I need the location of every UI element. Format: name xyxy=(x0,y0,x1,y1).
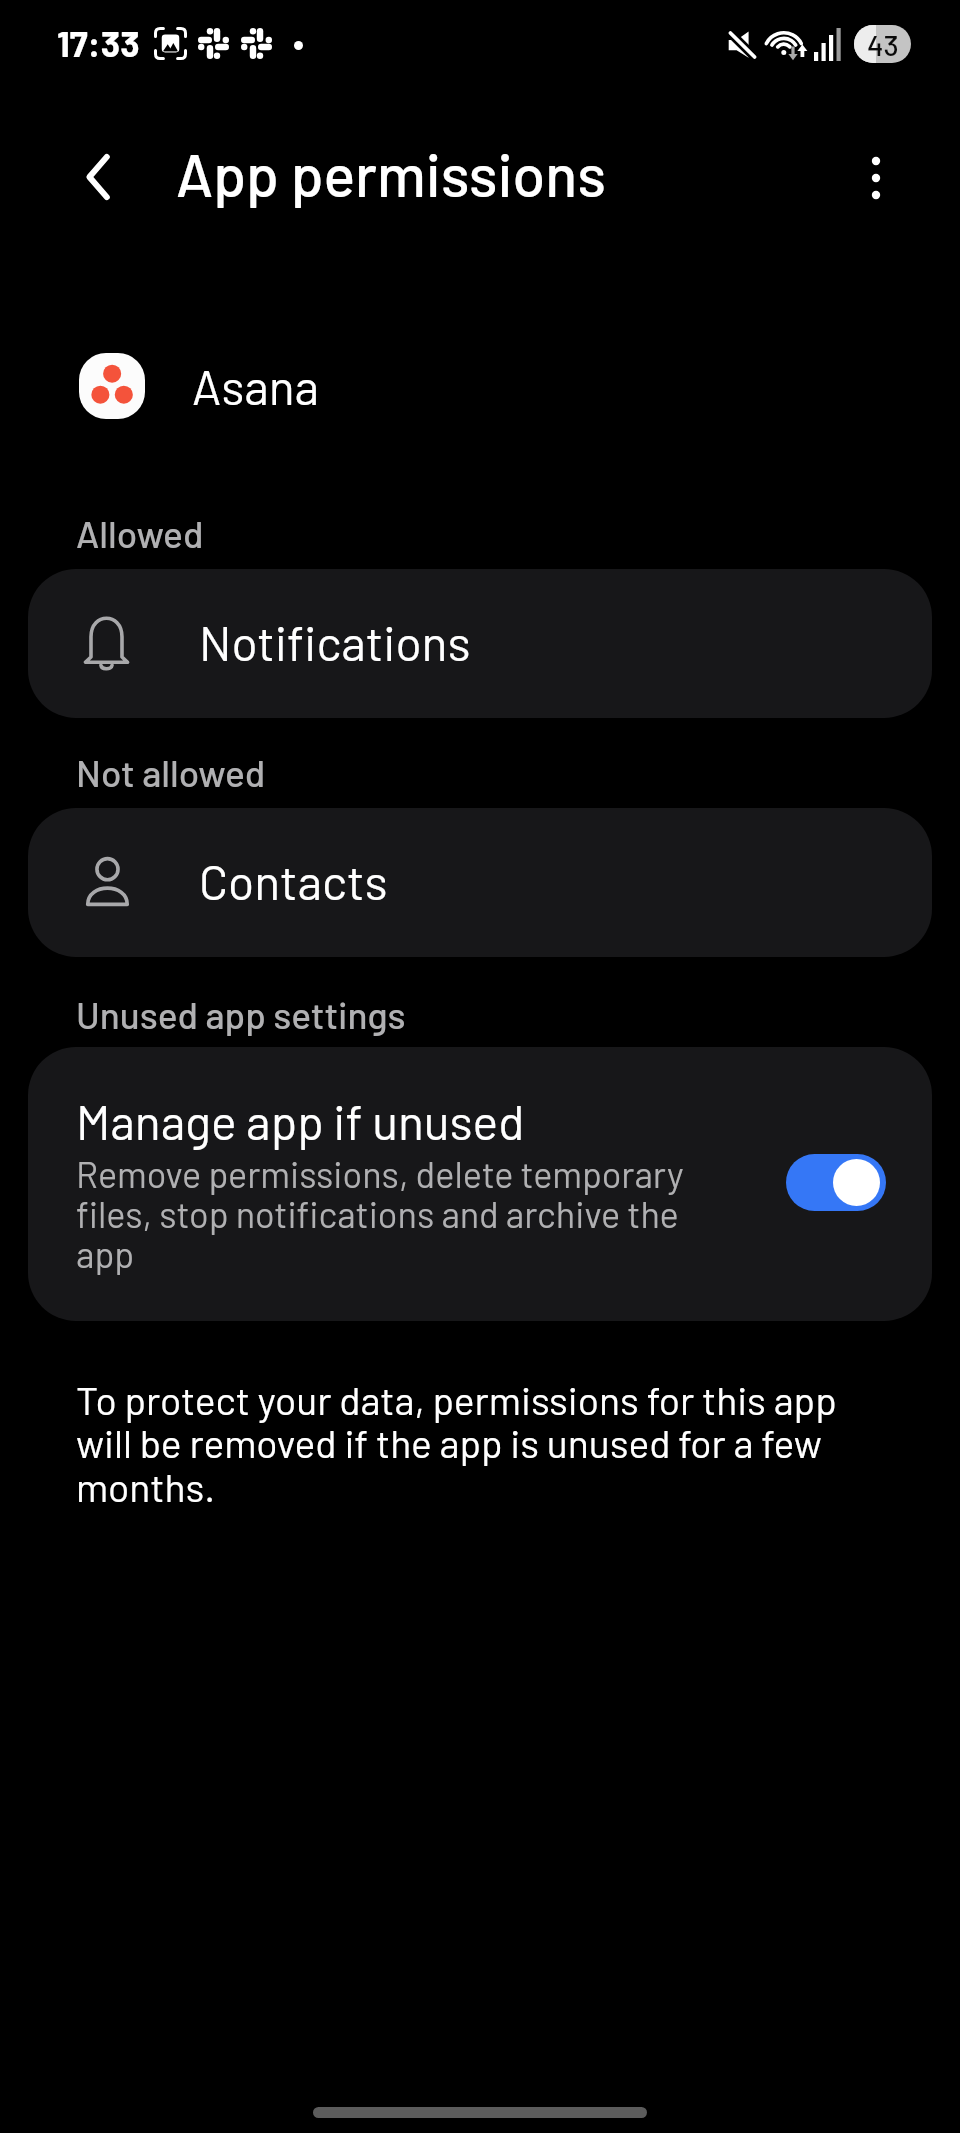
staticText: 43 xyxy=(867,27,899,62)
staticText: Unused app settings xyxy=(76,992,406,1036)
staticText: 17:33 xyxy=(57,21,140,64)
button[interactable]: Manage app if unused xyxy=(28,1047,932,1321)
staticText: Manage app if unused xyxy=(76,1092,525,1150)
staticText: Contacts xyxy=(199,852,388,910)
staticText: Notifications xyxy=(199,613,471,671)
staticText: App permissions xyxy=(176,138,606,209)
button[interactable]: Notifications xyxy=(28,569,932,718)
staticText: Asana xyxy=(192,357,320,415)
staticText: To protect your data, permissions for th… xyxy=(76,1376,876,1510)
button[interactable]: More options xyxy=(831,133,921,223)
staticText: Allowed xyxy=(76,511,204,555)
button[interactable]: Contacts xyxy=(28,808,932,957)
button[interactable]: Back xyxy=(64,133,154,223)
button[interactable]: Manage app if unused toggle xyxy=(786,1154,886,1211)
button[interactable]: Asana xyxy=(28,330,932,442)
staticText: Not allowed xyxy=(76,750,266,794)
staticText: Remove permissions, delete temporary fil… xyxy=(76,1152,716,1276)
